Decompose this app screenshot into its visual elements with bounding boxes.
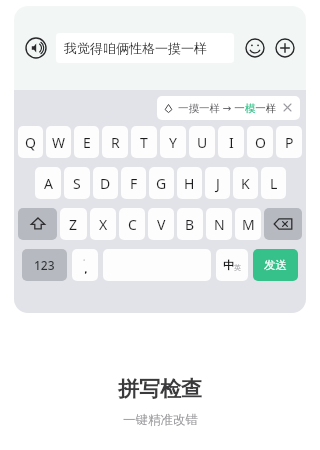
staticText: A <box>44 174 53 193</box>
button[interactable]: P <box>276 126 302 158</box>
staticText: K <box>241 174 250 193</box>
button[interactable]: More <box>272 35 298 61</box>
button[interactable]: G <box>149 167 174 199</box>
button[interactable]: O <box>247 126 273 158</box>
button[interactable]: E <box>74 126 99 158</box>
staticText: I <box>229 133 234 152</box>
staticText: H <box>184 174 195 193</box>
staticText: E <box>83 133 91 152</box>
button[interactable]: 123 <box>22 249 67 281</box>
staticText: 拼写检查 <box>118 376 202 402</box>
button[interactable]: B <box>177 208 203 240</box>
staticText: J <box>216 174 220 193</box>
staticText: Z <box>69 215 78 234</box>
button[interactable]: Emoji <box>242 35 268 61</box>
button[interactable]: Punctuation <box>72 249 98 281</box>
staticText: Q <box>25 133 36 152</box>
staticText: V <box>157 215 166 234</box>
button[interactable]: 我觉得咱俩性格一摸一样 <box>56 33 234 63</box>
staticText: 。 <box>83 254 89 262</box>
button[interactable]: M <box>235 208 261 240</box>
staticText: F <box>130 174 138 193</box>
button[interactable]: S <box>64 167 90 199</box>
button[interactable]: U <box>189 126 215 158</box>
button[interactable]: 发送 <box>253 249 298 281</box>
staticText: U <box>197 133 208 152</box>
staticText: P <box>285 133 294 152</box>
staticText: X <box>99 215 108 234</box>
button[interactable]: R <box>102 126 128 158</box>
button[interactable]: Backspace <box>264 208 302 240</box>
staticText: S <box>73 174 81 193</box>
staticText: R <box>111 133 120 152</box>
button[interactable]: K <box>233 167 258 199</box>
button[interactable]: T <box>131 126 157 158</box>
button[interactable]: Q <box>18 126 43 158</box>
button[interactable]: H <box>177 167 202 199</box>
staticText: T <box>140 133 148 152</box>
other: Dismiss <box>283 103 293 113</box>
staticText: L <box>270 174 278 193</box>
staticText: Y <box>169 133 177 152</box>
button[interactable]: C <box>119 208 145 240</box>
button[interactable]: A <box>35 167 61 199</box>
staticText: W <box>52 133 66 152</box>
button[interactable]: D <box>93 167 118 199</box>
staticText: G <box>156 174 167 193</box>
button[interactable]: Chinese English toggle <box>216 249 248 281</box>
staticText: 一键精准改错 <box>123 412 198 428</box>
button[interactable]: Shift <box>18 208 57 240</box>
staticText: 一摸一样 → 一模一样 <box>178 101 277 115</box>
staticText: 英 <box>234 263 241 272</box>
button[interactable]: F <box>121 167 146 199</box>
button[interactable]: 一摸一样 → 一模一样 <box>157 96 300 120</box>
staticText: 中 <box>223 258 234 272</box>
button[interactable]: Y <box>160 126 186 158</box>
button[interactable]: Voice input <box>22 34 50 62</box>
staticText: O <box>255 133 266 152</box>
button[interactable]: X <box>90 208 116 240</box>
button[interactable]: L <box>261 167 286 199</box>
button[interactable]: V <box>148 208 174 240</box>
staticText: B <box>185 215 195 234</box>
staticText: N <box>214 215 225 234</box>
staticText: 我觉得咱俩性格一摸一样 <box>64 40 207 56</box>
button[interactable]: J <box>205 167 230 199</box>
button[interactable]: I <box>218 126 244 158</box>
button[interactable]: Z <box>60 208 87 240</box>
staticText: C <box>128 215 137 234</box>
staticText: ， <box>80 262 91 276</box>
staticText: 发送 <box>264 258 287 272</box>
staticText: M <box>242 215 255 234</box>
staticText: D <box>100 174 111 193</box>
button[interactable]: W <box>46 126 71 158</box>
staticText: 123 <box>34 257 55 273</box>
button[interactable]: N <box>206 208 232 240</box>
